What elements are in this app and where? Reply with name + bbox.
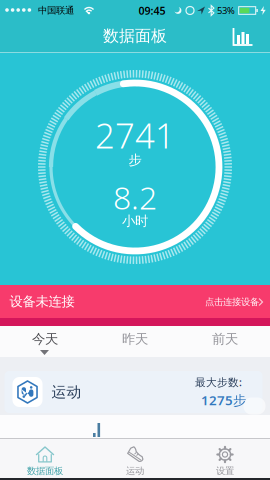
- button[interactable]: 点击连接设备: [0, 285, 270, 326]
- staticText: 运动: [126, 465, 144, 477]
- staticText: 53%: [217, 4, 235, 17]
- button[interactable]: 设置: [180, 438, 270, 480]
- staticText: 点击连接设备: [205, 296, 259, 308]
- button[interactable]: 数据面板: [0, 438, 90, 480]
- staticText: 数据面板: [27, 465, 63, 477]
- staticText: 8.2: [113, 176, 157, 218]
- staticText: 2741: [95, 112, 175, 158]
- staticText: 最大步数:: [195, 375, 242, 389]
- staticText: 运动: [51, 383, 81, 401]
- staticText: 步: [128, 152, 141, 168]
- button[interactable]: 统计图表: [223, 20, 263, 53]
- staticText: 设置: [216, 465, 234, 477]
- staticText: 09:45: [138, 3, 165, 18]
- staticText: 设备未连接: [9, 293, 74, 310]
- staticText: 昨天: [122, 331, 148, 347]
- button[interactable]: 今天: [0, 324, 90, 354]
- staticText: 数据面板: [103, 26, 167, 46]
- button[interactable]: 前天: [180, 324, 270, 354]
- staticText: 1275步: [201, 391, 246, 409]
- button[interactable]: 运动: [4, 371, 262, 413]
- button[interactable]: 运动: [90, 438, 180, 480]
- staticText: 今天: [32, 331, 58, 347]
- button[interactable]: 昨天: [90, 324, 180, 354]
- staticText: 中国联通: [38, 5, 74, 16]
- staticText: 前天: [212, 331, 238, 347]
- staticText: 小时: [122, 213, 148, 229]
